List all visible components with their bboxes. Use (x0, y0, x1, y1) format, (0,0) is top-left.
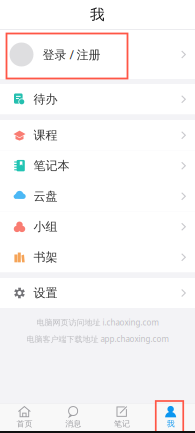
button[interactable]: 云盘 (0, 181, 195, 211)
button[interactable]: 笔记 (97, 401, 146, 433)
button[interactable]: 消息 (49, 401, 98, 433)
staticText: 电脑客户端下载地址 app.chaoxing.com (26, 334, 168, 344)
button[interactable]: 首页 (0, 401, 49, 433)
staticText: 笔记 (114, 419, 130, 429)
staticText: 我 (167, 419, 175, 429)
button[interactable]: 小组 (0, 211, 195, 242)
button[interactable]: 我 (146, 401, 195, 433)
button[interactable]: 书架 (0, 242, 195, 272)
staticText: 设置 (33, 286, 57, 300)
staticText: 登录 / 注册 (42, 46, 100, 62)
staticText: 书架 (33, 250, 57, 265)
staticText: 小组 (33, 219, 57, 234)
button[interactable]: 课程 (0, 120, 195, 150)
button[interactable]: 登录 / 注册 (0, 30, 195, 79)
button[interactable]: 设置 (0, 278, 195, 308)
staticText: 云盘 (33, 189, 57, 204)
button[interactable]: 待办 (0, 84, 195, 114)
staticText: 我 (90, 5, 105, 23)
button[interactable]: 笔记本 (0, 150, 195, 181)
staticText: 首页 (16, 419, 32, 429)
staticText: 课程 (33, 128, 57, 143)
staticText: 待办 (33, 92, 57, 107)
staticText: 电脑网页访问地址 i.chaoxing.com (36, 317, 158, 328)
staticText: 笔记本 (33, 158, 69, 173)
staticText: 消息 (65, 419, 81, 429)
